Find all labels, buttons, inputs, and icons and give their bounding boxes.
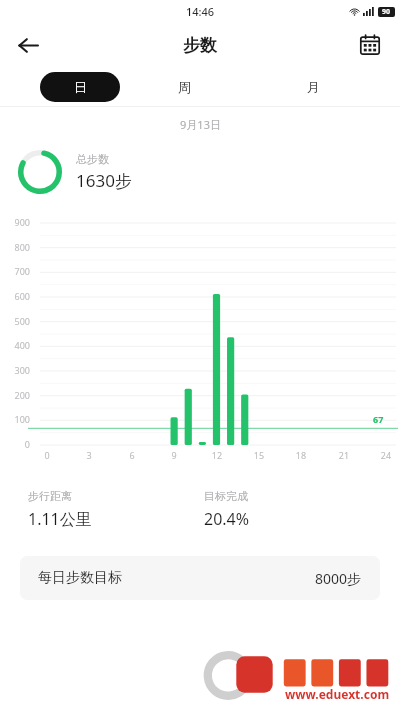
- staticText: 每日步数目标: [38, 569, 122, 587]
- staticText: 0: [2, 438, 30, 450]
- staticText: 600: [2, 290, 30, 302]
- staticText: 3: [77, 449, 101, 461]
- staticText: 700: [2, 265, 30, 277]
- staticText: 周: [178, 79, 191, 95]
- staticText: 67: [373, 413, 384, 425]
- staticText: 步行距离: [28, 489, 72, 503]
- staticText: 6: [120, 449, 144, 461]
- staticText: 9: [162, 449, 186, 461]
- staticText: 日: [74, 79, 87, 95]
- staticText: 14:46: [186, 4, 215, 19]
- staticText: 18: [289, 449, 313, 461]
- button[interactable]: 日: [40, 72, 120, 102]
- staticText: 月: [307, 79, 320, 95]
- button[interactable]: Back: [8, 25, 48, 65]
- staticText: 200: [2, 389, 30, 401]
- staticText: 400: [2, 339, 30, 351]
- staticText: 步数: [183, 35, 217, 56]
- button[interactable]: 周: [120, 72, 249, 102]
- staticText: 8000步: [315, 569, 362, 588]
- staticText: 800: [2, 241, 30, 253]
- staticText: 1630步: [76, 169, 132, 192]
- button[interactable]: 月: [249, 72, 378, 102]
- button[interactable]: Calendar: [350, 25, 390, 65]
- staticText: 900: [2, 216, 30, 228]
- staticText: 目标完成: [204, 489, 248, 503]
- staticText: 24: [374, 449, 398, 461]
- staticText: 100: [2, 413, 30, 425]
- button[interactable]: 每日步数目标: [20, 556, 380, 600]
- staticText: 500: [2, 315, 30, 327]
- staticText: 0: [35, 449, 59, 461]
- staticText: 300: [2, 364, 30, 376]
- staticText: 90: [382, 7, 391, 17]
- staticText: 20.4%: [204, 508, 250, 530]
- staticText: 21: [332, 449, 356, 461]
- staticText: 15: [247, 449, 271, 461]
- staticText: 总步数: [76, 152, 109, 166]
- staticText: 12: [205, 449, 229, 461]
- staticText: 1.11公里: [28, 508, 92, 530]
- staticText: 9月13日: [180, 117, 221, 132]
- staticText: www.eduext.com: [285, 686, 390, 702]
